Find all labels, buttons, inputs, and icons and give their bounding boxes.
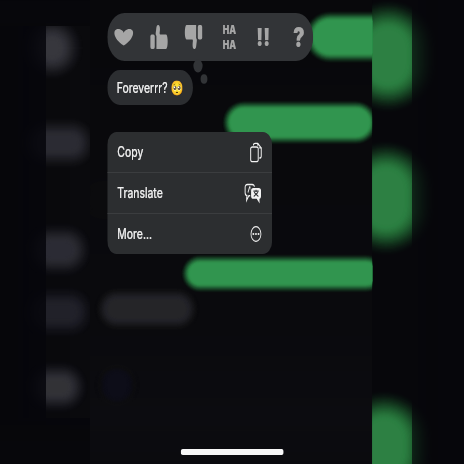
staticText: More... [117, 225, 152, 243]
button[interactable]: Foreverrr? 🥺 [107, 70, 193, 105]
staticText: !! [256, 22, 271, 52]
staticText: Translate [117, 184, 163, 202]
button[interactable]: Translate [107, 173, 272, 213]
staticText: HA [222, 37, 236, 52]
button[interactable]: Copy [107, 132, 272, 172]
staticText: HA [222, 22, 236, 37]
button[interactable]: Tapback reactions [107, 13, 313, 61]
staticText: Copy [117, 143, 144, 161]
staticText: Foreverrr? 🥺 [117, 79, 184, 97]
button[interactable]: More... [107, 214, 272, 254]
staticText: ? [293, 21, 305, 54]
